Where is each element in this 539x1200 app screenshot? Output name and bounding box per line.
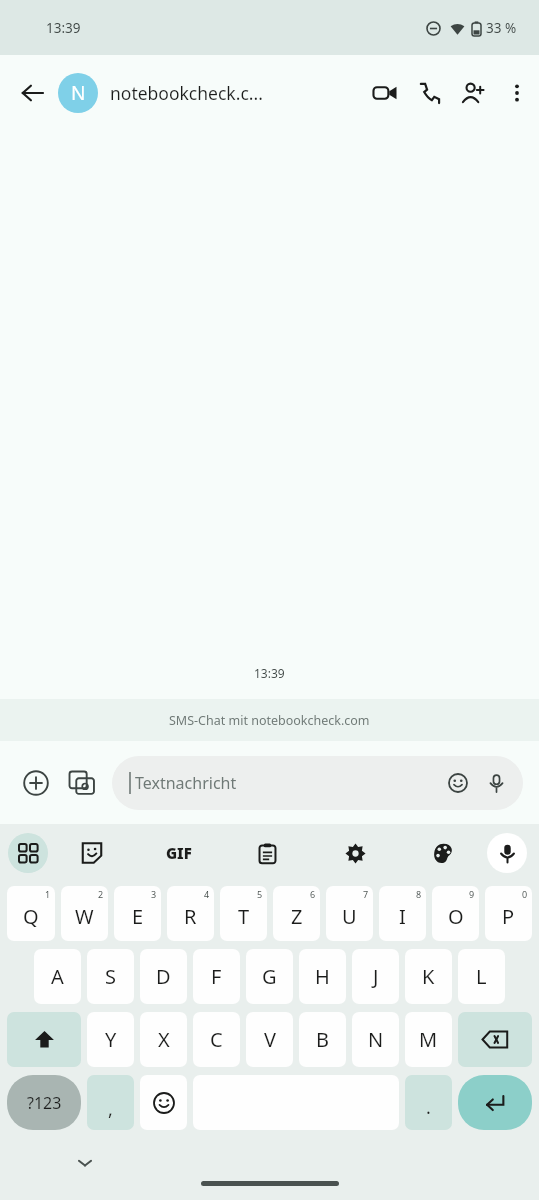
- staticText: 2: [98, 888, 104, 900]
- button[interactable]: Themes: [423, 833, 463, 873]
- button[interactable]: ,: [87, 1075, 134, 1130]
- staticText: 8: [416, 888, 422, 900]
- button[interactable]: Video call: [363, 71, 407, 115]
- button[interactable]: 7: [326, 886, 373, 941]
- button[interactable]: Textnachricht: [112, 756, 523, 810]
- button[interactable]: 9: [432, 886, 479, 941]
- staticText: 13:39: [46, 19, 81, 37]
- button[interactable]: Add contact: [451, 71, 495, 115]
- button[interactable]: Keyboard modes: [8, 833, 48, 873]
- staticText: ?123: [27, 1092, 62, 1114]
- staticText: Q: [23, 903, 39, 930]
- staticText: Y: [105, 1026, 117, 1053]
- staticText: P: [502, 903, 515, 930]
- button[interactable]: D: [140, 949, 187, 1004]
- button[interactable]: A: [34, 949, 81, 1004]
- staticText: 1: [45, 888, 51, 900]
- button[interactable]: ?123: [7, 1075, 81, 1130]
- staticText: 3: [151, 888, 157, 900]
- staticText: 0: [522, 888, 528, 900]
- staticText: 9: [469, 888, 475, 900]
- button[interactable]: L: [458, 949, 505, 1004]
- button[interactable]: V: [246, 1012, 293, 1067]
- button[interactable]: J: [352, 949, 399, 1004]
- button[interactable]: 5: [220, 886, 267, 941]
- staticText: Z: [291, 903, 303, 930]
- button[interactable]: 1: [7, 886, 55, 941]
- staticText: I: [399, 903, 406, 930]
- staticText: F: [211, 963, 222, 990]
- staticText: S: [105, 963, 116, 990]
- staticText: J: [373, 963, 379, 990]
- staticText: L: [476, 963, 487, 990]
- button[interactable]: 3: [114, 886, 161, 941]
- staticText: R: [184, 903, 197, 930]
- staticText: V: [264, 1026, 276, 1053]
- staticText: D: [156, 963, 171, 990]
- button[interactable]: 6: [273, 886, 320, 941]
- staticText: Textnachricht: [135, 772, 441, 794]
- button[interactable]: Add attachment: [16, 763, 56, 803]
- staticText: N: [71, 80, 86, 106]
- button[interactable]: 2: [61, 886, 108, 941]
- button[interactable]: F: [193, 949, 240, 1004]
- button[interactable]: Camera: [62, 763, 102, 803]
- staticText: GIF: [166, 843, 192, 863]
- button[interactable]: Backspace: [458, 1012, 532, 1067]
- button[interactable]: Call: [407, 71, 451, 115]
- staticText: T: [238, 903, 250, 930]
- staticText: H: [315, 963, 330, 990]
- button[interactable]: B: [299, 1012, 346, 1067]
- button[interactable]: Stickers: [72, 833, 112, 873]
- staticText: W: [75, 903, 94, 930]
- staticText: 33 %: [486, 19, 517, 37]
- button[interactable]: G: [246, 949, 293, 1004]
- staticText: 5: [257, 888, 263, 900]
- staticText: N: [368, 1026, 384, 1053]
- button[interactable]: M: [405, 1012, 452, 1067]
- button[interactable]: Settings: [335, 833, 375, 873]
- button[interactable]: Enter: [458, 1075, 532, 1130]
- staticText: G: [262, 963, 277, 990]
- button[interactable]: N: [352, 1012, 399, 1067]
- staticText: .: [426, 1095, 431, 1120]
- button[interactable]: Emoji: [441, 766, 475, 800]
- button[interactable]: Emoji keyboard: [140, 1075, 187, 1130]
- button[interactable]: 8: [379, 886, 426, 941]
- button[interactable]: 4: [167, 886, 214, 941]
- button[interactable]: Clipboard: [247, 833, 287, 873]
- staticText: ,: [108, 1097, 113, 1122]
- staticText: notebookcheck.c...: [110, 81, 263, 105]
- button[interactable]: X: [140, 1012, 187, 1067]
- button[interactable]: Hide keyboard: [68, 1146, 102, 1180]
- staticText: A: [51, 963, 64, 990]
- button[interactable]: Voice input: [479, 766, 513, 800]
- staticText: SMS-Chat mit notebookcheck.com: [169, 712, 370, 729]
- button[interactable]: GIF: [152, 833, 206, 873]
- button[interactable]: C: [193, 1012, 240, 1067]
- staticText: O: [448, 903, 464, 930]
- staticText: 13:39: [254, 665, 285, 681]
- button[interactable]: S: [87, 949, 134, 1004]
- staticText: X: [158, 1026, 170, 1053]
- staticText: K: [422, 963, 435, 990]
- button[interactable]: Y: [87, 1012, 134, 1067]
- staticText: B: [316, 1026, 329, 1053]
- staticText: M: [419, 1026, 438, 1053]
- button[interactable]: N: [54, 73, 363, 113]
- staticText: E: [132, 903, 144, 930]
- button[interactable]: Shift: [7, 1012, 81, 1067]
- button[interactable]: .: [405, 1075, 452, 1130]
- button[interactable]: K: [405, 949, 452, 1004]
- staticText: 7: [363, 888, 369, 900]
- button[interactable]: More options: [495, 71, 539, 115]
- staticText: U: [342, 903, 357, 930]
- staticText: 6: [310, 888, 316, 900]
- staticText: 4: [204, 888, 210, 900]
- button[interactable]: 0: [485, 886, 532, 941]
- staticText: C: [210, 1026, 223, 1053]
- button[interactable]: Voice typing: [487, 833, 527, 873]
- button[interactable]: H: [299, 949, 346, 1004]
- button[interactable]: Back: [10, 71, 54, 115]
